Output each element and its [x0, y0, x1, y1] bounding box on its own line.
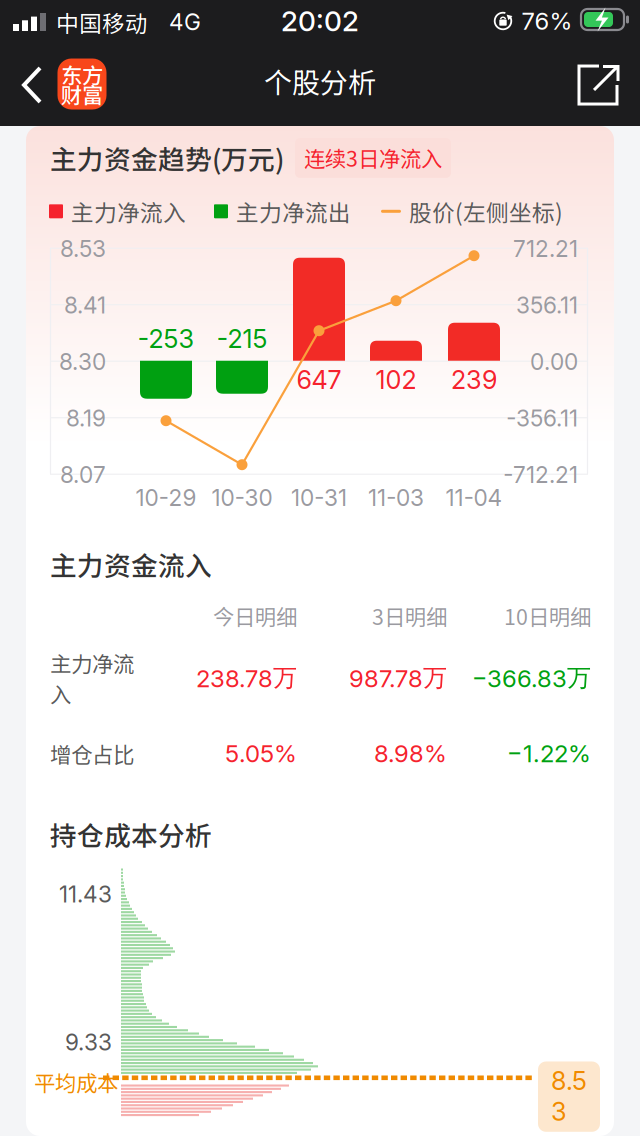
staticText: 8.53 [551, 1065, 587, 1127]
staticText: -356.11 [506, 404, 578, 432]
staticText: 987.78万 [349, 663, 447, 693]
staticText: 主力净流入 [71, 195, 186, 228]
staticText: 主力资金趋势(万元) [50, 139, 284, 177]
staticText: 5.05% [225, 739, 297, 768]
staticText: 今日明细 [213, 600, 297, 631]
staticText: -253 [137, 323, 194, 354]
staticText: 647 [296, 364, 341, 395]
staticText: 8.07 [60, 461, 106, 488]
staticText: 主力净流入 [50, 647, 134, 709]
staticText: 20:02 [281, 4, 359, 38]
staticText: 股价(左侧坐标) [409, 195, 563, 228]
staticText: 10-29 [135, 484, 196, 511]
staticText: 10-31 [291, 484, 347, 511]
staticText: 主力净流出 [236, 195, 351, 228]
staticText: 356.11 [516, 291, 578, 319]
staticText: 76% [521, 6, 572, 35]
staticText: 0.00 [530, 348, 578, 375]
staticText: 8.41 [64, 291, 106, 319]
staticText: 11-04 [445, 484, 502, 511]
staticText: 平均成本 [34, 1066, 118, 1097]
staticText: 财富 [61, 79, 103, 109]
staticText: 102 [375, 364, 416, 395]
button[interactable]: 东方财富 [57, 58, 106, 109]
staticText: 持仓成本分析 [50, 815, 212, 853]
staticText: 11-03 [368, 484, 424, 511]
staticText: 个股分析 [264, 61, 376, 101]
staticText: 10-30 [211, 484, 272, 511]
staticText: 8.30 [59, 348, 106, 375]
staticText: 8.19 [66, 404, 106, 432]
staticText: -215 [216, 323, 267, 354]
staticText: 3日明细 [372, 600, 447, 631]
button[interactable]: 返回 [9, 56, 55, 114]
staticText: 9.33 [65, 1028, 112, 1056]
staticText: 8.98% [374, 739, 447, 768]
button[interactable]: 分享 [563, 52, 635, 120]
staticText: −366.83万 [472, 663, 591, 693]
staticText: −1.22% [507, 739, 591, 768]
staticText: 增仓占比 [50, 738, 134, 769]
staticText: 连续3日净流入 [304, 142, 442, 173]
staticText: 10日明细 [504, 600, 591, 631]
staticText: 主力资金流入 [50, 545, 212, 583]
staticText: 238.78万 [196, 663, 297, 693]
staticText: 中国移动 [56, 6, 148, 38]
staticText: 8.53 [60, 235, 106, 262]
staticText: 11.43 [59, 880, 112, 908]
staticText: 东方 [61, 59, 103, 89]
staticText: 712.21 [513, 235, 578, 262]
staticText: -712.21 [503, 461, 578, 488]
staticText: 4G [169, 8, 201, 36]
staticText: 239 [451, 364, 497, 395]
